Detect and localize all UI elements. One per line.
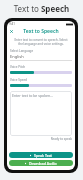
staticText: English — [10, 54, 24, 59]
staticText: Text to Speech — [7, 28, 75, 35]
staticText: Text to Speech — [0, 3, 83, 14]
button[interactable] — [10, 71, 72, 74]
staticText: Enter text to be spoken... — [12, 93, 53, 98]
staticText: Voice Pitch — [10, 65, 26, 69]
staticText: Voice Speed — [10, 78, 27, 82]
button[interactable]: Close — [9, 29, 14, 34]
staticText: Download Audio — [29, 161, 57, 166]
staticText: Speak Text — [34, 153, 52, 158]
button[interactable]: Speak Text — [9, 152, 73, 158]
staticText: 9:41 — [9, 22, 15, 26]
button[interactable]: Download Audio — [9, 160, 73, 166]
staticText: Ready to speak — [10, 137, 72, 141]
button[interactable] — [10, 84, 72, 87]
button[interactable]: Enter text to be spoken... — [10, 91, 72, 136]
staticText: Select Language — [10, 49, 34, 53]
staticText: Enter text to convert to speech. Select … — [10, 38, 72, 46]
